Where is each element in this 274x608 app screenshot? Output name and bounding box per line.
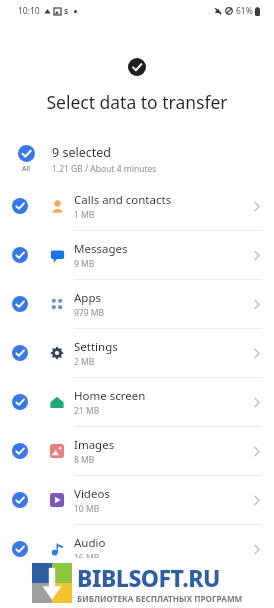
button[interactable]: All	[0, 136, 274, 182]
staticText: 979 MB	[74, 307, 105, 319]
staticText: 9 MB	[74, 258, 95, 270]
staticText: Videos	[74, 486, 110, 502]
button[interactable]: Home screen	[0, 378, 274, 427]
staticText: All	[22, 164, 31, 174]
staticText: 9 selected	[52, 144, 111, 161]
staticText: 61%	[236, 5, 253, 17]
staticText: 8 MB	[74, 454, 95, 466]
staticText: 10 MB	[74, 503, 100, 515]
button[interactable]: Apps	[0, 280, 274, 329]
staticText: Calls and contacts	[74, 192, 172, 208]
staticText: BIBLSOFT.RU	[77, 562, 220, 593]
button[interactable]: Images	[0, 427, 274, 476]
staticText: Settings	[74, 339, 118, 355]
button[interactable]: Videos	[0, 476, 274, 525]
staticText: Home screen	[74, 388, 146, 404]
staticText: 21 MB	[74, 405, 100, 417]
staticText: БИБЛИОТЕКА БЕСПЛАТНЫХ ПРОГРАММ	[77, 593, 243, 604]
staticText: 2 MB	[74, 356, 95, 368]
staticText: 10:10	[18, 5, 40, 17]
button[interactable]: Calls and contacts	[0, 182, 274, 231]
button[interactable]: Settings	[0, 329, 274, 378]
button[interactable]: Messages	[0, 231, 274, 280]
staticText: 16 MB	[74, 552, 100, 564]
staticText: 1 MB	[74, 209, 95, 221]
staticText: Apps	[74, 290, 102, 306]
staticText: Audio	[74, 535, 106, 551]
staticText: Select data to transfer	[0, 90, 274, 114]
staticText: 1.21 GB / About 4 minutes	[52, 163, 157, 175]
staticText: Images	[74, 437, 115, 453]
button[interactable]: Audio	[0, 525, 274, 574]
staticText: S	[64, 6, 69, 16]
staticText: Messages	[74, 241, 128, 257]
